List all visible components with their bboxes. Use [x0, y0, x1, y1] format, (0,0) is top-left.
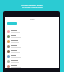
staticText: Lorem ipsum dolor — [21, 3, 43, 6]
staticText: Title — [30, 18, 35, 21]
button[interactable] — [5, 59, 59, 64]
button[interactable] — [5, 44, 59, 49]
staticText: sit amet consectetur — [22, 6, 43, 9]
button[interactable] — [7, 22, 17, 25]
button[interactable] — [5, 29, 59, 34]
button[interactable] — [5, 34, 59, 39]
button[interactable] — [5, 54, 59, 59]
button[interactable] — [5, 49, 59, 54]
button[interactable] — [5, 39, 59, 44]
button[interactable] — [5, 64, 59, 69]
